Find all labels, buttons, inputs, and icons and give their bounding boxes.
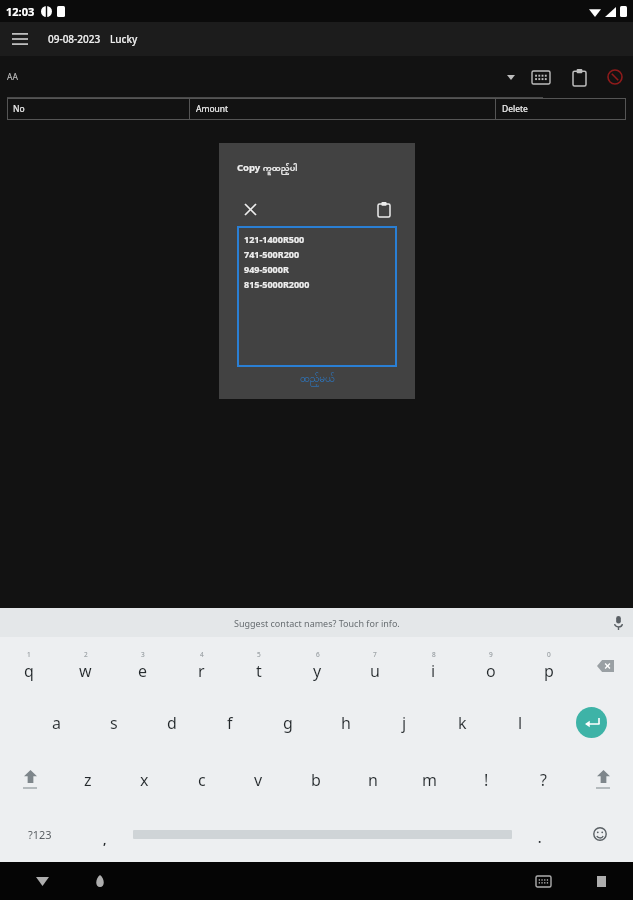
staticText: t — [256, 660, 262, 682]
button[interactable]: Shift — [572, 751, 633, 808]
button[interactable]: Paste from clipboard — [561, 59, 597, 95]
button[interactable]: Keyboard input — [521, 57, 561, 97]
staticText: c — [198, 769, 206, 791]
button[interactable]: 2 — [57, 637, 114, 694]
button[interactable]: 9 — [462, 637, 520, 694]
staticText: No — [13, 103, 25, 115]
staticText: 4 — [200, 650, 204, 659]
button[interactable]: v — [230, 751, 287, 808]
staticText: 3 — [141, 650, 145, 659]
staticText: h — [341, 712, 351, 734]
staticText: Suggest contact names? Touch for info. — [234, 617, 400, 629]
button[interactable]: , — [79, 808, 131, 860]
staticText: v — [254, 769, 263, 791]
button[interactable]: Emoji — [566, 808, 633, 860]
staticText: 741-500R200 — [244, 248, 300, 260]
staticText: r — [198, 660, 205, 682]
button[interactable]: 5 — [230, 637, 288, 694]
button[interactable]: c — [173, 751, 230, 808]
button[interactable]: h — [317, 694, 375, 751]
button[interactable]: Paste from clipboard — [371, 196, 397, 222]
staticText: y — [313, 660, 322, 682]
staticText: 09-08-2023 — [48, 32, 101, 46]
button[interactable]: ထည့်မယ် — [237, 372, 397, 387]
staticText: ?123 — [28, 827, 52, 842]
staticText: l — [518, 712, 523, 734]
button[interactable]: Hide keyboard — [24, 863, 60, 899]
button[interactable]: ? — [515, 751, 572, 808]
button[interactable]: l — [491, 694, 549, 751]
staticText: g — [283, 712, 293, 734]
button[interactable]: Backspace — [578, 637, 633, 694]
staticText: w — [79, 660, 92, 682]
staticText: 5 — [257, 650, 261, 659]
staticText: 12:03 — [6, 4, 35, 19]
staticText: , — [103, 831, 107, 847]
button[interactable]: Voice input — [604, 608, 633, 637]
button[interactable]: ?123 — [0, 808, 79, 860]
button[interactable]: 1 — [0, 637, 57, 694]
button[interactable]: Shift — [0, 751, 60, 808]
staticText: j — [402, 712, 407, 734]
staticText: 949-5000R — [244, 263, 289, 275]
button[interactable]: Block entry — [597, 59, 633, 95]
staticText: a — [52, 712, 61, 734]
staticText: 815-5000R2000 — [244, 278, 310, 290]
button[interactable]: 0 — [520, 637, 578, 694]
button[interactable]: ! — [458, 751, 515, 808]
button[interactable]: j — [375, 694, 433, 751]
staticText: o — [486, 660, 496, 682]
button[interactable]: 7 — [346, 637, 404, 694]
button[interactable]: 3 — [114, 637, 172, 694]
button[interactable]: d — [143, 694, 201, 751]
button[interactable]: 121-1400R500 — [237, 226, 397, 367]
button[interactable]: k — [433, 694, 491, 751]
button[interactable]: s — [85, 694, 143, 751]
button[interactable]: 4 — [172, 637, 230, 694]
staticText: e — [138, 660, 148, 682]
staticText: 8 — [432, 650, 436, 659]
button[interactable]: Clear text — [237, 196, 263, 222]
staticText: 2 — [84, 650, 88, 659]
staticText: u — [370, 660, 380, 682]
button[interactable]: Space — [131, 808, 514, 860]
staticText: AA — [7, 71, 18, 83]
staticText: i — [431, 660, 436, 682]
button[interactable]: x — [116, 751, 173, 808]
button[interactable]: Enter — [549, 694, 633, 751]
button[interactable]: a — [28, 694, 85, 751]
staticText: Amount — [196, 103, 229, 115]
staticText: n — [368, 769, 378, 791]
staticText: 0 — [547, 650, 551, 659]
staticText: ထည့်မယ် — [300, 372, 335, 387]
staticText: k — [458, 712, 467, 734]
staticText: m — [422, 769, 437, 791]
button[interactable]: g — [259, 694, 317, 751]
button[interactable]: Home — [82, 863, 118, 899]
button[interactable]: Recent apps — [583, 863, 619, 899]
button[interactable]: z — [60, 751, 116, 808]
button[interactable]: Suggest contact names? Touch for info. — [0, 608, 633, 637]
staticText: . — [538, 830, 542, 846]
staticText: d — [167, 712, 177, 734]
staticText: Lucky — [110, 32, 138, 46]
button[interactable]: b — [287, 751, 344, 808]
staticText: 121-1400R500 — [244, 233, 305, 245]
button[interactable]: Switch keyboard — [525, 863, 561, 899]
button[interactable]: Open navigation menu — [0, 22, 40, 56]
staticText: q — [24, 660, 34, 682]
button[interactable]: AA — [0, 56, 521, 98]
staticText: b — [311, 769, 321, 791]
staticText: ! — [484, 769, 489, 791]
staticText: 7 — [373, 650, 377, 659]
staticText: 1 — [27, 650, 31, 659]
button[interactable]: 8 — [404, 637, 462, 694]
staticText: Copy ကူထည့်ပါ — [237, 161, 298, 176]
button[interactable]: 6 — [288, 637, 346, 694]
staticText: ? — [540, 769, 547, 791]
staticText: p — [544, 660, 554, 682]
button[interactable]: . — [514, 808, 566, 860]
button[interactable]: m — [401, 751, 458, 808]
button[interactable]: f — [201, 694, 259, 751]
button[interactable]: n — [344, 751, 401, 808]
